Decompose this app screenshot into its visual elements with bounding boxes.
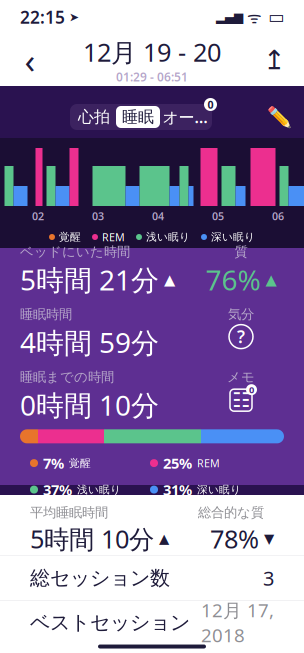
staticText: 22:15 (20, 5, 65, 28)
staticText: 心拍 (78, 107, 110, 127)
staticText: 78% (210, 522, 259, 555)
staticText: 質 (234, 244, 247, 260)
staticText: 03 (92, 209, 104, 223)
button[interactable]: Mood (229, 325, 253, 349)
staticText: ✏️ (266, 106, 291, 128)
staticText: ➤ (65, 10, 79, 24)
staticText: ? (237, 325, 245, 348)
staticText: 総合的な質 (198, 504, 264, 521)
staticText: 01:29 - 06:51 (116, 69, 188, 85)
staticText: 総セッション数 (30, 566, 170, 590)
button[interactable]: Edit (262, 100, 296, 134)
staticText: ベストセッション (30, 610, 190, 635)
staticText: 睡眠時間 (20, 306, 72, 323)
staticText: 覚醒 (59, 230, 81, 243)
button[interactable]: Back (8, 38, 52, 82)
staticText: ☷ (232, 389, 250, 411)
staticText: ▼ (264, 531, 274, 546)
staticText: ▭ (262, 7, 284, 27)
staticText: ᯤ (243, 6, 262, 28)
staticText: ▂▄▆ (216, 10, 243, 24)
staticText: 7% (43, 453, 64, 473)
staticText: 深い眠り (211, 230, 255, 243)
staticText: メモ (227, 369, 255, 385)
staticText: 覚醒 (69, 456, 91, 470)
staticText: 5時間 10分 (30, 522, 154, 555)
staticText: 4時間 59分 (20, 324, 159, 361)
staticText: ▲ (164, 271, 175, 288)
staticText: REM (102, 230, 125, 244)
staticText: 睡眠までの時間 (20, 369, 114, 385)
staticText: 浅い眠り (77, 483, 121, 496)
button[interactable]: 総セッション数 (0, 556, 304, 600)
staticText: ▲ (265, 271, 276, 288)
staticText: 3 (263, 565, 274, 591)
staticText: 02 (32, 209, 44, 223)
staticText: 12月 17, 2018 (201, 598, 274, 647)
staticText: 平均睡眠時間 (30, 504, 108, 521)
staticText: 25% (163, 453, 192, 473)
button[interactable]: 睡眠 (116, 106, 160, 128)
staticText: 睡眠 (122, 107, 154, 127)
button[interactable]: Share (252, 38, 296, 82)
staticText: オー… (162, 106, 207, 128)
staticText: ▲ (159, 531, 169, 546)
staticText: 0 (249, 383, 254, 396)
staticText: 5時間 21分 (20, 261, 159, 298)
staticText: 0時間 10分 (20, 386, 159, 423)
staticText: 06 (272, 209, 284, 223)
staticText: 12月 19 - 20 (83, 35, 221, 69)
button[interactable]: Notes (228, 387, 254, 413)
staticText: 05 (212, 209, 224, 223)
staticText: REM (197, 456, 220, 470)
staticText: ↥ (263, 45, 285, 75)
button[interactable]: 心拍 (72, 106, 116, 128)
staticText: ベッドにいた時間 (20, 244, 130, 260)
staticText: 04 (152, 209, 164, 223)
staticText: 気分 (228, 306, 254, 323)
button[interactable]: ベストセッション (0, 600, 304, 644)
staticText: 0 (207, 97, 213, 112)
staticText: ‹ (24, 37, 35, 83)
staticText: 37% (43, 480, 72, 499)
staticText: 76% (205, 261, 260, 298)
staticText: 31% (163, 480, 192, 499)
button[interactable]: オー… (160, 106, 210, 128)
staticText: 浅い眠り (146, 230, 190, 243)
staticText: 深い眠り (197, 483, 241, 496)
